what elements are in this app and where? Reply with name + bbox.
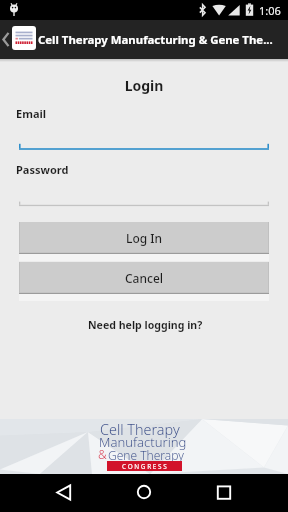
staticText: Password [16,162,69,177]
staticText: C O N G R E S S [122,462,167,471]
button[interactable]: Home [120,474,168,512]
button[interactable]: Back [40,474,88,512]
staticText: Cancel [125,270,164,286]
staticText: Log In [126,230,163,246]
button[interactable]: Need help logging in? [1,318,288,332]
button[interactable]: Back [0,20,12,59]
staticText: & [98,446,107,463]
button[interactable]: Recent apps [200,474,248,512]
staticText: Manufacturing [99,433,187,451]
staticText: Need help logging in? [88,318,203,332]
staticText: Email [16,106,47,121]
button[interactable]: Cancel [19,262,269,294]
staticText: Cell Therapy [100,420,180,440]
staticText: Gene Therapy [108,447,184,463]
button[interactable]: Log In [19,222,269,254]
staticText: 1:06 [259,3,281,18]
staticText: Cell Therapy Manufacturing & Gene The... [38,32,273,48]
staticText: Login [0,76,288,95]
